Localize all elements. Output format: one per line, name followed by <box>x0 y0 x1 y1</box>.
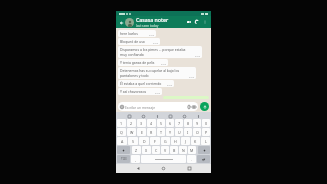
staticText: . <box>191 157 192 162</box>
button[interactable]: Recents <box>186 165 193 172</box>
button[interactable]: I <box>184 128 192 136</box>
button[interactable]: P <box>202 128 210 136</box>
button[interactable]: Contact photo <box>125 18 134 27</box>
staticText: A <box>121 139 124 144</box>
staticText: last seen today <box>136 24 159 28</box>
button[interactable]: Detenemos has su cupelar al bajo los <box>118 67 196 79</box>
button[interactable]: E <box>137 128 146 136</box>
staticText: E <box>141 130 143 135</box>
button[interactable]: . <box>187 155 196 163</box>
staticText: Y tenia ganas de pelis <box>120 60 155 65</box>
button[interactable]: Back <box>135 165 142 172</box>
button[interactable]: X <box>142 146 151 154</box>
button[interactable]: Emoji <box>131 155 140 163</box>
staticText: Casasa noter <box>136 16 169 23</box>
staticText: R <box>150 130 153 135</box>
button[interactable]: 6 <box>166 119 174 127</box>
button[interactable]: Q <box>117 128 126 136</box>
button[interactable]: 3 <box>137 119 146 127</box>
staticText: 3 <box>140 121 143 126</box>
button[interactable]: B <box>170 146 178 154</box>
staticText: T <box>160 130 162 135</box>
staticText: 5 <box>160 121 163 126</box>
button[interactable]: C <box>152 146 160 154</box>
button[interactable]: U <box>175 128 183 136</box>
button[interactable]: R <box>147 128 156 136</box>
button[interactable]: Bloqueó de uso <box>118 38 160 45</box>
staticText: 9 <box>196 121 199 126</box>
staticText: U <box>178 130 181 135</box>
button[interactable]: More options <box>201 18 209 26</box>
button[interactable]: Home <box>160 165 167 172</box>
button[interactable]: Backspace <box>198 146 210 154</box>
staticText: J <box>185 139 186 144</box>
button[interactable]: T <box>157 128 165 136</box>
staticText: Bloqueó de uso <box>120 39 145 44</box>
button[interactable]: K <box>191 137 200 145</box>
button[interactable]: H <box>171 137 180 145</box>
button[interactable]: Toolbar 2 <box>155 114 159 118</box>
button[interactable]: 7 <box>175 119 183 127</box>
button[interactable]: Video call <box>185 18 193 26</box>
button[interactable]: Toolbar 5 <box>196 114 200 118</box>
button[interactable]: W <box>127 128 136 136</box>
button[interactable]: Toolbar 1 <box>141 114 145 118</box>
staticText: Z <box>135 148 138 153</box>
button[interactable]: Space <box>141 155 186 163</box>
button[interactable]: D <box>139 137 149 145</box>
staticText: Escribe un mensaje <box>125 105 156 109</box>
button[interactable]: Casasa noter <box>136 16 185 28</box>
button[interactable]: M <box>188 146 196 154</box>
button[interactable]: Toolbar 0 <box>127 114 131 118</box>
button[interactable]: O <box>193 128 201 136</box>
button[interactable]: 2 <box>127 119 136 127</box>
button[interactable]: Toolbar 3 <box>168 114 172 118</box>
staticText: 21:4 <box>195 54 200 57</box>
staticText: 1 <box>120 121 123 126</box>
button[interactable]: V <box>161 146 169 154</box>
button[interactable]: 1 <box>117 119 126 127</box>
button[interactable]: Y <box>166 128 174 136</box>
button[interactable]: Enter <box>197 155 210 163</box>
button[interactable]: 4 <box>147 119 156 127</box>
button[interactable]: S <box>128 137 138 145</box>
staticText: D <box>143 139 146 144</box>
button[interactable]: Disparamos a los pimes ... porque estaba <box>118 46 202 58</box>
other: Camera <box>192 105 196 109</box>
button[interactable]: L <box>201 137 210 145</box>
button[interactable]: 0 <box>202 119 210 127</box>
button[interactable]: G <box>161 137 170 145</box>
staticText: L <box>205 139 207 144</box>
button[interactable]: here karlos <box>118 30 156 37</box>
button[interactable]: Él estaba a quel corriendo <box>118 80 174 87</box>
staticText: 21:4 <box>155 91 160 94</box>
staticText: B <box>173 148 176 153</box>
button[interactable]: Shift <box>117 146 130 154</box>
button[interactable]: Back <box>118 19 125 26</box>
staticText: muy confiando <box>120 52 144 57</box>
staticText: Detenemos has su cupelar al bajo los <box>120 68 180 73</box>
button[interactable]: N <box>179 146 187 154</box>
button[interactable]: 5 <box>157 119 165 127</box>
staticText: ?123 <box>121 157 127 161</box>
button[interactable]: Y tenia ganas de pelis <box>118 59 168 66</box>
button[interactable]: 8 <box>184 119 192 127</box>
button[interactable]: Y así chavorosos <box>118 88 162 95</box>
button[interactable]: J <box>181 137 190 145</box>
staticText: 7 <box>178 121 181 126</box>
staticText: pantalones y todo <box>120 73 149 78</box>
button[interactable]: Voice message <box>200 102 209 111</box>
staticText: X <box>145 148 148 153</box>
button[interactable]: F <box>150 137 160 145</box>
button[interactable]: Toolbar 4 <box>182 114 186 118</box>
button[interactable]: A <box>117 137 127 145</box>
button[interactable]: 9 <box>193 119 201 127</box>
staticText: Disparamos a los pimes ... porque estaba <box>120 47 186 52</box>
button[interactable]: Z <box>132 146 141 154</box>
button[interactable]: Escribe un mensaje <box>118 102 198 111</box>
button[interactable]: Call <box>193 18 201 26</box>
button[interactable]: ?123 <box>117 155 130 163</box>
